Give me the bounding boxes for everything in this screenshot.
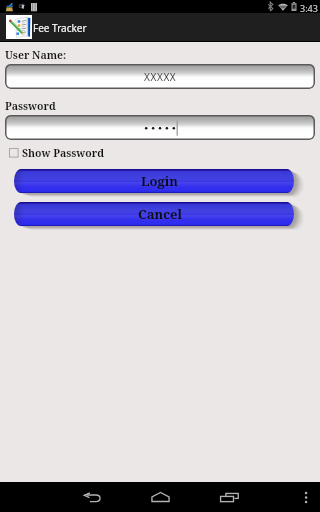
button[interactable]	[5, 115, 315, 140]
staticText: Show Password	[22, 146, 105, 160]
staticText: Login	[141, 172, 179, 190]
button[interactable]: Cancel	[14, 202, 306, 226]
button[interactable]: Back	[74, 482, 110, 512]
staticText: User Name:	[5, 48, 67, 62]
staticText: 3:43	[300, 2, 318, 14]
staticText: XXXXX	[144, 70, 177, 84]
staticText: Cancel	[138, 205, 183, 223]
button[interactable]: XXXXX	[5, 64, 315, 89]
button[interactable]: Home	[142, 482, 178, 512]
button[interactable]: Login	[14, 169, 306, 193]
button[interactable]: Recent apps	[211, 482, 247, 512]
staticText: Fee Tracker	[33, 21, 87, 35]
staticText: Password	[5, 99, 56, 113]
button[interactable]: More options	[296, 482, 317, 512]
button[interactable]: Show Password	[9, 146, 105, 160]
